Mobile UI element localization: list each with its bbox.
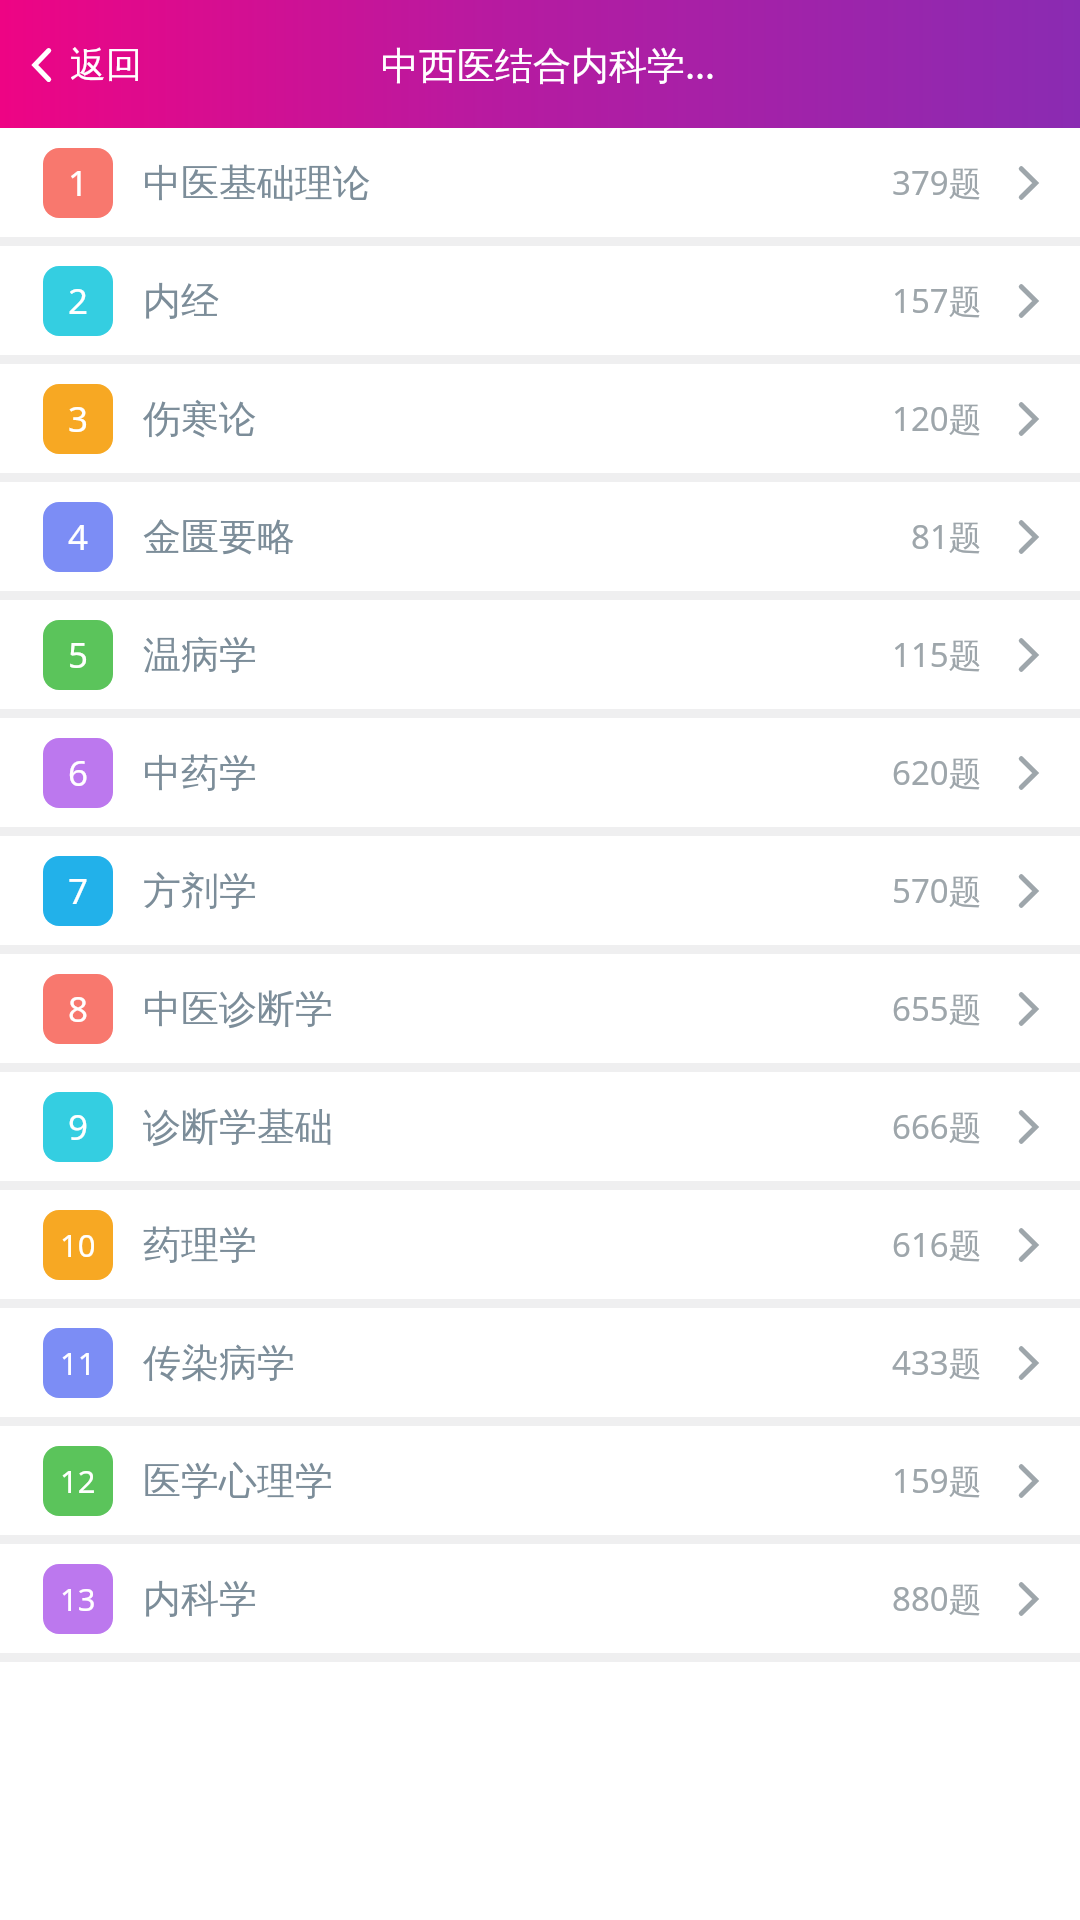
- other: 进入 内经: [1016, 280, 1040, 322]
- staticText: 1: [68, 159, 89, 207]
- staticText: 9: [68, 1103, 89, 1151]
- other: 进入 诊断学基础: [1016, 1106, 1040, 1148]
- staticText: 159题: [892, 1458, 982, 1503]
- staticText: 2: [68, 277, 89, 325]
- staticText: 433题: [892, 1340, 982, 1385]
- staticText: 4: [68, 513, 89, 561]
- other: 进入 医学心理学: [1016, 1460, 1040, 1502]
- staticText: 570题: [892, 868, 982, 913]
- button[interactable]: 2: [0, 246, 1080, 355]
- staticText: 12: [60, 1460, 96, 1502]
- other: 进入 金匮要略: [1016, 516, 1040, 558]
- button[interactable]: 11: [0, 1308, 1080, 1417]
- staticText: 3: [68, 395, 89, 443]
- staticText: 7: [68, 867, 89, 915]
- staticText: 120题: [892, 396, 982, 441]
- staticText: 5: [68, 631, 89, 679]
- button[interactable]: 3: [0, 364, 1080, 473]
- staticText: 8: [68, 985, 89, 1033]
- staticText: 81题: [911, 514, 982, 559]
- staticText: 6: [68, 749, 89, 797]
- staticText: 伤寒论: [143, 395, 257, 443]
- button[interactable]: 1: [0, 128, 1080, 237]
- button[interactable]: 10: [0, 1190, 1080, 1299]
- other: 进入 温病学: [1016, 634, 1040, 676]
- staticText: 金匮要略: [143, 513, 295, 561]
- button[interactable]: 7: [0, 836, 1080, 945]
- staticText: 中医基础理论: [143, 159, 371, 207]
- staticText: 616题: [892, 1222, 982, 1267]
- staticText: 655题: [892, 986, 982, 1031]
- staticText: 379题: [892, 160, 982, 205]
- button[interactable]: 12: [0, 1426, 1080, 1535]
- staticText: 方剂学: [143, 867, 257, 915]
- staticText: 157题: [892, 278, 982, 323]
- staticText: 10: [60, 1224, 96, 1266]
- staticText: 620题: [892, 750, 982, 795]
- button[interactable]: 8: [0, 954, 1080, 1063]
- other: 进入 中医基础理论: [1016, 162, 1040, 204]
- staticText: 666题: [892, 1104, 982, 1149]
- staticText: 13: [60, 1578, 96, 1620]
- other: 进入 伤寒论: [1016, 398, 1040, 440]
- staticText: 内经: [143, 277, 219, 325]
- other: 进入 方剂学: [1016, 870, 1040, 912]
- button[interactable]: 4: [0, 482, 1080, 591]
- staticText: 880题: [892, 1576, 982, 1621]
- button[interactable]: 5: [0, 600, 1080, 709]
- staticText: 药理学: [143, 1221, 257, 1269]
- staticText: 诊断学基础: [143, 1103, 333, 1151]
- staticText: 传染病学: [143, 1339, 295, 1387]
- staticText: 115题: [892, 632, 982, 677]
- other: 进入 传染病学: [1016, 1342, 1040, 1384]
- button[interactable]: 13: [0, 1544, 1080, 1653]
- staticText: 11: [60, 1342, 96, 1384]
- staticText: 返回: [70, 42, 142, 87]
- other: 进入 内科学: [1016, 1578, 1040, 1620]
- button[interactable]: 6: [0, 718, 1080, 827]
- staticText: 温病学: [143, 631, 257, 679]
- staticText: 医学心理学: [143, 1457, 333, 1505]
- other: 进入 中医诊断学: [1016, 988, 1040, 1030]
- other: 进入 中药学: [1016, 752, 1040, 794]
- staticText: 中西医结合内科学…: [381, 38, 716, 90]
- button[interactable]: 9: [0, 1072, 1080, 1181]
- button[interactable]: 返回: [18, 28, 154, 101]
- staticText: 中医诊断学: [143, 985, 333, 1033]
- other: 进入 药理学: [1016, 1224, 1040, 1266]
- staticText: 内科学: [143, 1575, 257, 1623]
- staticText: 中药学: [143, 749, 257, 797]
